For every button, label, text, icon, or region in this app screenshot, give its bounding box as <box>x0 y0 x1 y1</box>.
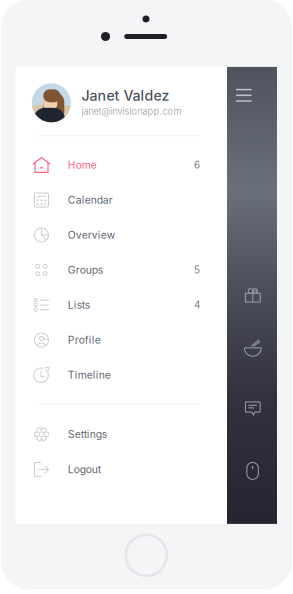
staticText: janet@invisionapp.com <box>81 106 181 117</box>
button[interactable]: Gifts <box>245 288 261 303</box>
button[interactable]: Janet Valdez <box>81 87 191 117</box>
button[interactable]: Devices <box>247 462 258 479</box>
staticText: 4 <box>194 299 200 311</box>
button[interactable]: Groups <box>32 257 200 283</box>
staticText: Logout <box>68 463 101 476</box>
staticText: 5 <box>194 264 200 276</box>
staticText: Janet Valdez <box>81 87 169 104</box>
staticText: Overview <box>68 229 116 241</box>
button[interactable]: Menu <box>236 88 252 102</box>
staticText: Home <box>68 159 97 171</box>
button[interactable]: Timeline <box>32 362 200 388</box>
button[interactable]: Profile <box>32 327 200 353</box>
staticText: Settings <box>68 428 107 441</box>
staticText: Calendar <box>68 194 113 206</box>
button[interactable]: Overview <box>32 222 200 248</box>
staticText: Lists <box>68 299 90 311</box>
staticText: Profile <box>68 334 101 346</box>
button[interactable]: Meals <box>244 339 262 355</box>
button[interactable]: Home <box>32 152 200 178</box>
button[interactable]: Logout <box>32 456 200 482</box>
button[interactable]: Settings <box>32 421 200 447</box>
button[interactable]: Messages <box>245 401 261 415</box>
button[interactable]: Calendar <box>32 187 200 213</box>
staticText: 6 <box>194 159 200 171</box>
staticText: Timeline <box>68 369 111 381</box>
staticText: Groups <box>68 264 103 276</box>
button[interactable]: Lists <box>32 292 200 318</box>
